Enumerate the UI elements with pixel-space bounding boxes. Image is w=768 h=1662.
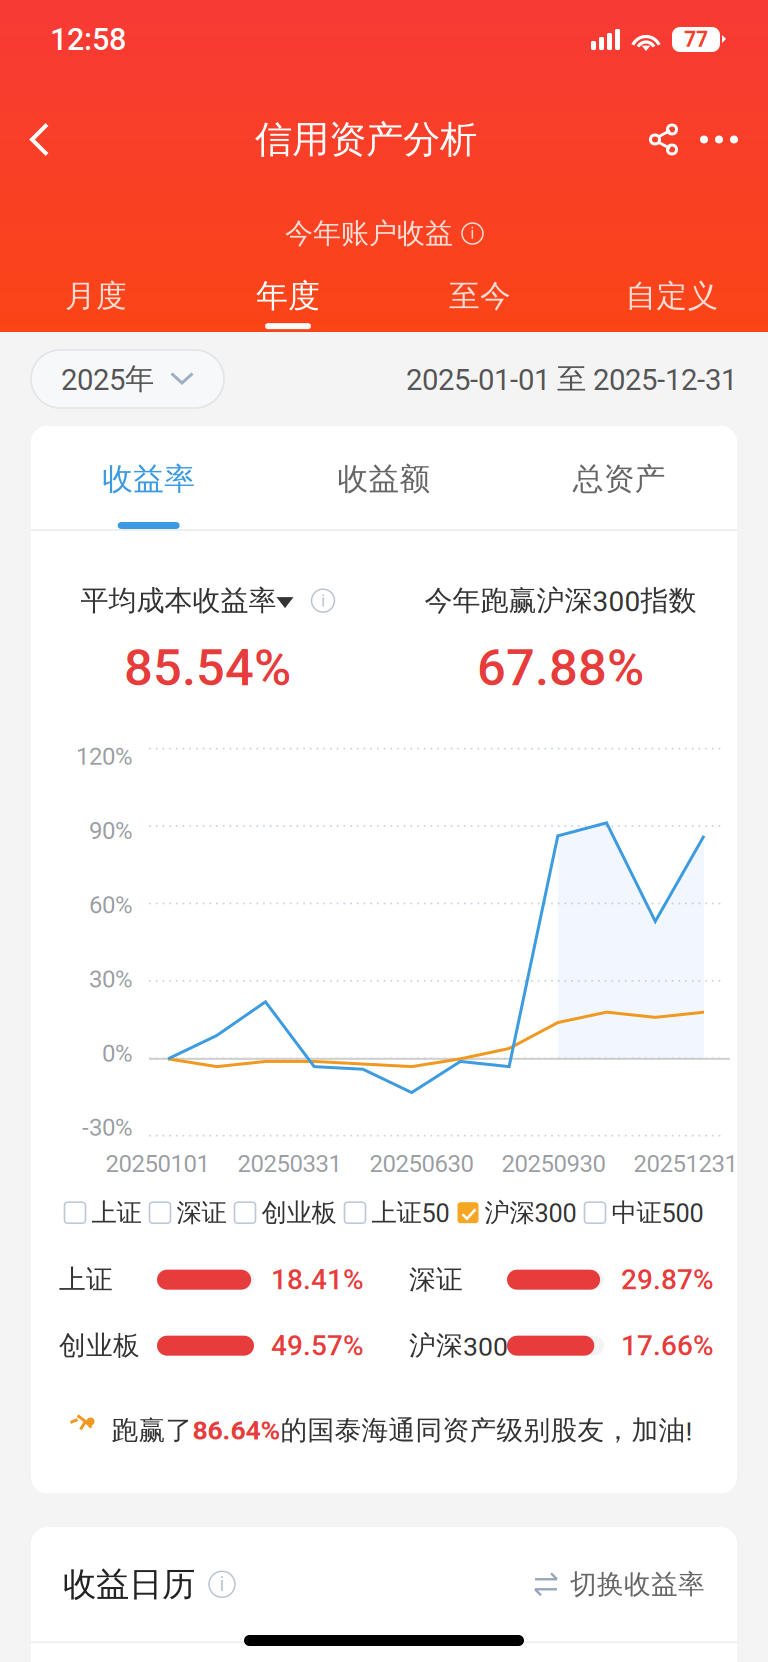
staticText: i	[219, 1573, 224, 1596]
staticText: 上证	[59, 1263, 113, 1296]
staticText: 收益额	[337, 460, 430, 498]
button[interactable]: Back	[28, 106, 94, 172]
button[interactable]: 上证	[64, 1197, 141, 1229]
staticText: 创业板	[59, 1329, 140, 1362]
staticText: 的国泰海通同资产级别股友，加油!	[280, 1414, 692, 1447]
button[interactable]: 自定义	[576, 274, 768, 330]
button[interactable]: 月度	[0, 274, 192, 330]
staticText: 收益率	[102, 460, 195, 498]
staticText: 收益日历	[63, 1563, 195, 1605]
staticText: 20250630	[369, 1150, 473, 1178]
button[interactable]: 深证	[149, 1197, 226, 1229]
staticText: 49.57%	[271, 1329, 364, 1362]
staticText: 中证500	[611, 1197, 703, 1229]
staticText: 17.66%	[621, 1329, 714, 1362]
staticText: 2025-01-01 至 2025-12-31	[406, 360, 737, 397]
staticText: 60%	[89, 891, 133, 919]
staticText: 切换收益率	[570, 1567, 705, 1601]
staticText: 29.87%	[621, 1263, 714, 1296]
staticText: 至今	[449, 277, 511, 315]
staticText: 20250930	[501, 1150, 605, 1178]
staticText: 30%	[89, 965, 133, 993]
staticText: 深证	[409, 1263, 463, 1296]
staticText: 自定义	[625, 277, 718, 315]
staticText: 创业板	[261, 1197, 336, 1229]
staticText: 20250101	[105, 1150, 209, 1178]
staticText: 信用资产分析	[255, 116, 477, 163]
button[interactable]: 创业板	[234, 1197, 336, 1229]
staticText: 今年跑赢沪深300指数	[424, 583, 696, 618]
staticText: -30%	[82, 1114, 133, 1142]
button[interactable]: 中证500	[584, 1197, 703, 1229]
staticText: 85.54%	[124, 638, 291, 698]
staticText: 67.88%	[477, 638, 644, 698]
staticText: 月度	[65, 277, 127, 315]
staticText: i	[470, 224, 474, 243]
staticText: 上证	[91, 1197, 141, 1229]
button[interactable]: 切换收益率	[533, 1567, 705, 1601]
staticText: 120%	[76, 743, 133, 771]
staticText: 0%	[102, 1039, 133, 1067]
staticText: 12:58	[50, 21, 126, 57]
button[interactable]: 年度	[192, 274, 384, 330]
staticText: 18.41%	[271, 1263, 364, 1296]
staticText: 沪深300	[409, 1329, 508, 1362]
button[interactable]: More options	[690, 106, 748, 172]
staticText: 深证	[176, 1197, 226, 1229]
button[interactable]: 至今	[384, 274, 576, 330]
button[interactable]: 总资产	[502, 426, 737, 529]
staticText: 77	[684, 27, 708, 52]
button[interactable]: Share	[638, 106, 690, 172]
staticText: i	[321, 591, 325, 611]
staticText: 20250331	[237, 1150, 341, 1178]
staticText: 90%	[89, 817, 133, 845]
staticText: 20251231	[633, 1150, 737, 1178]
staticText: 年度	[256, 276, 320, 316]
staticText: 平均成本收益率	[80, 583, 276, 618]
button[interactable]: 上证50	[344, 1197, 449, 1229]
staticText: 2025年	[61, 360, 154, 397]
staticText: 今年账户收益	[285, 216, 453, 251]
staticText: 86.64%	[192, 1415, 280, 1446]
staticText: 上证50	[371, 1197, 449, 1229]
button[interactable]: 2025年	[31, 350, 224, 408]
staticText: 跑赢了	[111, 1414, 192, 1447]
button[interactable]: 收益额	[266, 426, 502, 529]
button[interactable]: 收益率	[31, 426, 266, 529]
staticText: 沪深300	[484, 1197, 576, 1229]
button[interactable]: 沪深300	[457, 1197, 576, 1229]
staticText: 总资产	[573, 460, 666, 498]
